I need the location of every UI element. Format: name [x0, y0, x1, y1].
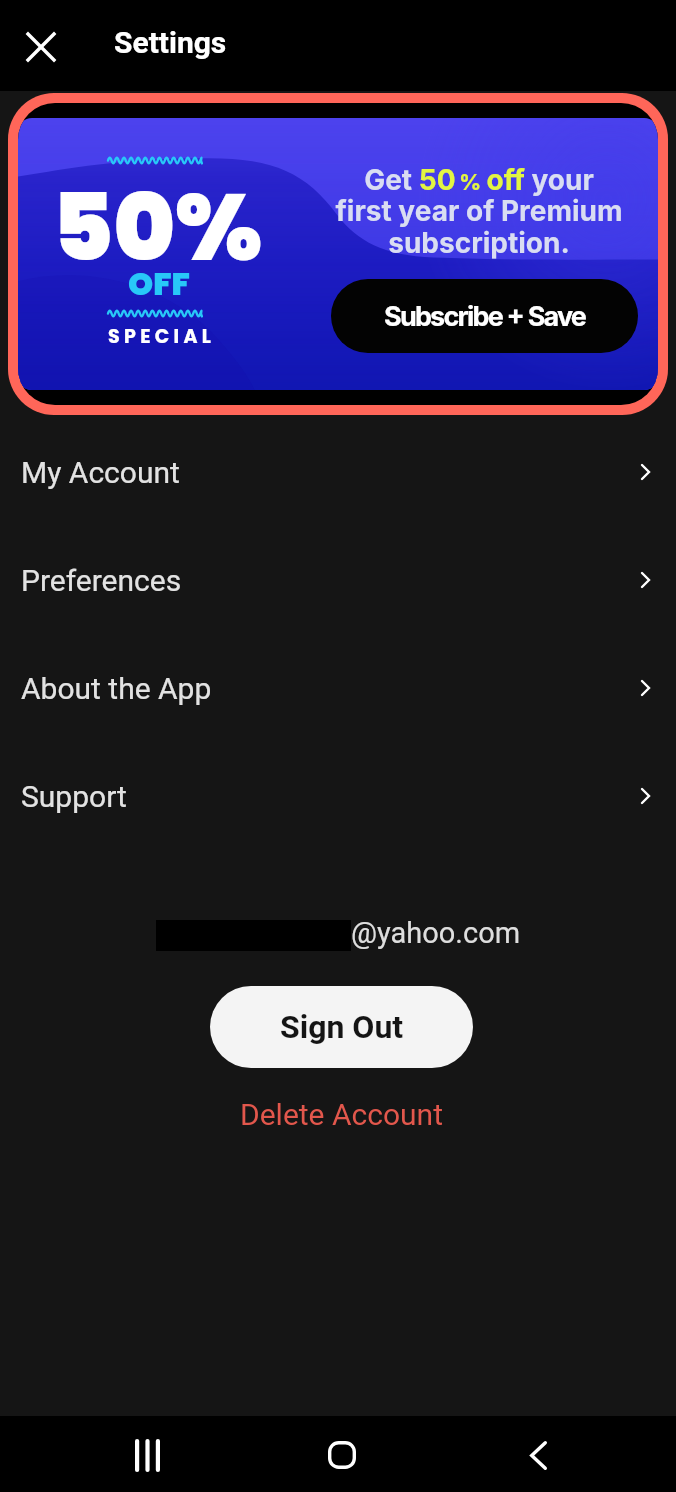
- button[interactable]: Subscribe + Save: [331, 279, 638, 353]
- button[interactable]: Support: [0, 742, 676, 850]
- staticText: 50%: [52, 162, 263, 292]
- staticText: OFF: [128, 261, 191, 306]
- button[interactable]: Back: [510, 1427, 566, 1483]
- button[interactable]: Sign Out: [210, 986, 473, 1068]
- button[interactable]: My Account: [0, 418, 676, 526]
- button[interactable]: Delete Account: [226, 1092, 457, 1137]
- button[interactable]: Home: [314, 1427, 370, 1483]
- button[interactable]: About the App: [0, 634, 676, 742]
- staticText: Preferences: [21, 563, 182, 598]
- staticText: SPECIAL: [108, 323, 216, 350]
- staticText: Sign Out: [280, 1008, 404, 1046]
- button[interactable]: 50%: [18, 103, 658, 405]
- button[interactable]: Close: [13, 19, 68, 74]
- staticText: Get 50 % off your first year of Premium …: [309, 163, 649, 260]
- button[interactable]: Preferences: [0, 526, 676, 634]
- staticText: Delete Account: [240, 1097, 443, 1132]
- staticText: Settings: [114, 25, 227, 60]
- staticText: My Account: [21, 455, 180, 490]
- button[interactable]: Recent apps: [119, 1427, 175, 1483]
- staticText: Support: [21, 779, 127, 814]
- staticText: @yahoo.com: [351, 916, 521, 950]
- staticText: About the App: [21, 671, 212, 706]
- staticText: Subscribe + Save: [384, 300, 586, 333]
